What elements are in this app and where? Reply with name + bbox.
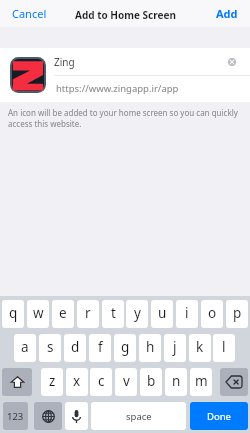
button[interactable]: Clear text xyxy=(228,58,236,66)
staticText: Done xyxy=(207,410,231,423)
button[interactable]: x xyxy=(66,368,88,396)
staticText: j xyxy=(173,338,177,356)
button[interactable]: c xyxy=(90,368,112,396)
staticText: e xyxy=(59,304,67,322)
button[interactable]: w xyxy=(27,300,49,328)
staticText: Add xyxy=(216,6,238,21)
staticText: m xyxy=(195,372,208,390)
button[interactable]: Done xyxy=(190,402,248,430)
staticText: h xyxy=(146,338,155,356)
button[interactable]: p xyxy=(226,300,248,328)
staticText: space xyxy=(126,410,152,423)
staticText: 123 xyxy=(7,410,24,423)
button[interactable]: q xyxy=(2,300,24,328)
button[interactable]: b xyxy=(140,368,162,396)
button[interactable]: i xyxy=(176,300,198,328)
button[interactable]: m xyxy=(190,368,212,396)
button[interactable]: s xyxy=(39,334,61,362)
staticText: q xyxy=(9,304,18,322)
button[interactable]: v xyxy=(115,368,137,396)
staticText: An icon will be added to your home scree… xyxy=(8,107,241,130)
staticText: x xyxy=(73,372,81,390)
staticText: t xyxy=(111,304,116,322)
button[interactable]: space xyxy=(91,402,186,430)
staticText: a xyxy=(21,338,29,356)
button[interactable]: l xyxy=(213,334,235,362)
button[interactable]: z xyxy=(41,368,63,396)
staticText: u xyxy=(158,304,167,322)
button[interactable]: n xyxy=(165,368,187,396)
staticText: f xyxy=(98,338,103,356)
staticText: s xyxy=(47,338,54,356)
staticText: https://www.zingapp.ir/app xyxy=(56,82,179,95)
staticText: y xyxy=(134,304,141,322)
staticText: p xyxy=(233,304,242,322)
staticText: k xyxy=(196,338,204,356)
staticText: l xyxy=(222,338,226,356)
staticText: w xyxy=(33,304,44,322)
button[interactable]: y xyxy=(126,300,148,328)
button[interactable]: Add xyxy=(206,1,250,26)
button[interactable]: Cancel xyxy=(0,1,57,26)
staticText: Zing xyxy=(54,55,75,69)
button[interactable]: 123 xyxy=(3,402,28,430)
staticText: g xyxy=(121,338,130,356)
staticText: Add to Home Screen xyxy=(75,8,176,22)
staticText: Cancel xyxy=(12,6,47,21)
staticText: z xyxy=(49,372,56,390)
staticText: b xyxy=(147,372,156,390)
staticText: c xyxy=(98,372,105,390)
button[interactable]: a xyxy=(14,334,36,362)
staticText: n xyxy=(172,372,181,390)
staticText: r xyxy=(85,304,91,322)
button[interactable]: j xyxy=(164,334,186,362)
staticText: o xyxy=(208,304,217,322)
button[interactable]: t xyxy=(102,300,124,328)
button[interactable]: Dictate xyxy=(65,402,88,430)
button[interactable]: u xyxy=(151,300,173,328)
button[interactable]: f xyxy=(89,334,111,362)
button[interactable]: Switch keyboard xyxy=(34,402,62,430)
button[interactable]: Backspace xyxy=(220,368,248,396)
button[interactable]: d xyxy=(64,334,86,362)
staticText: d xyxy=(71,338,80,356)
button[interactable]: r xyxy=(77,300,99,328)
button[interactable]: o xyxy=(201,300,223,328)
staticText: v xyxy=(123,372,130,390)
button[interactable]: h xyxy=(139,334,161,362)
button[interactable]: k xyxy=(189,334,211,362)
button[interactable]: Shift xyxy=(2,368,32,396)
staticText: i xyxy=(185,304,189,322)
button[interactable]: e xyxy=(52,300,74,328)
button[interactable]: g xyxy=(114,334,136,362)
